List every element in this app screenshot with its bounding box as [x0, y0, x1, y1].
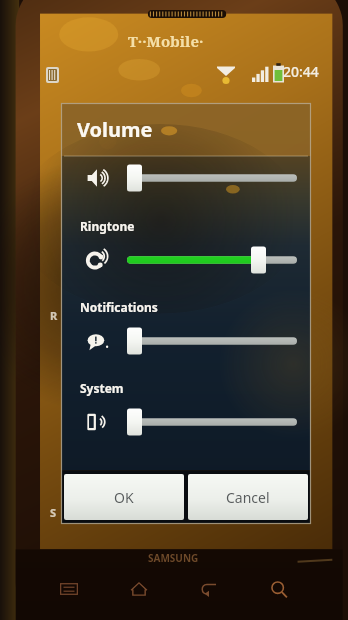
other: Media volume	[85, 165, 111, 191]
other: Notification volume	[85, 328, 111, 354]
other: Ringtone volume	[85, 247, 111, 273]
button[interactable]: Home	[128, 578, 150, 600]
staticText: 20:44	[283, 62, 319, 81]
button[interactable]: Ringtone volume	[61, 238, 311, 282]
button[interactable]	[125, 163, 299, 193]
staticText: SAMSUNG	[148, 551, 199, 565]
button[interactable]: Notification volume	[61, 319, 311, 363]
staticText: OK	[114, 488, 134, 507]
staticText: S	[50, 505, 57, 520]
staticText: Volume	[77, 116, 153, 143]
staticText: Cancel	[226, 488, 270, 507]
button[interactable]	[125, 407, 299, 437]
button[interactable]: Back	[198, 578, 220, 600]
button[interactable]: OK	[64, 474, 184, 520]
button[interactable]: Search	[268, 578, 290, 600]
button[interactable]: System volume	[61, 400, 311, 444]
staticText: R	[50, 308, 58, 323]
button[interactable]: Menu	[58, 578, 80, 600]
staticText: T··Mobile·	[128, 31, 204, 51]
staticText: Ringtone	[80, 218, 135, 234]
button[interactable]	[125, 326, 299, 356]
button[interactable]: Cancel	[188, 474, 308, 520]
button[interactable]	[125, 245, 299, 275]
button[interactable]: Media volume	[61, 156, 311, 200]
other: System volume	[85, 409, 111, 435]
staticText: Notifications	[80, 299, 158, 315]
staticText: System	[80, 380, 124, 396]
